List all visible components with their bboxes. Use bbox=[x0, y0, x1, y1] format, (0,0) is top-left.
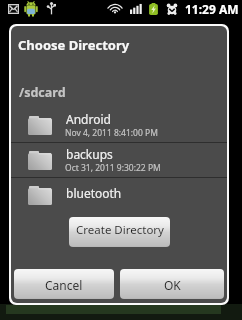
staticText: 11:29 AM bbox=[185, 1, 239, 17]
staticText: Create Directory bbox=[76, 222, 164, 238]
staticText: Nov 4, 2011 8:41:00 PM bbox=[65, 127, 158, 139]
button[interactable]: Android bbox=[11, 108, 227, 142]
staticText: Android bbox=[66, 111, 111, 127]
staticText: Oct 31, 2011 9:30:22 PM bbox=[65, 162, 161, 174]
staticText: Choose Directory bbox=[18, 36, 130, 54]
staticText: /sdcard bbox=[19, 84, 66, 101]
staticText: Cancel bbox=[45, 277, 83, 293]
button[interactable]: backups bbox=[11, 143, 227, 177]
staticText: bluetooth bbox=[66, 185, 122, 201]
staticText: backups bbox=[66, 146, 113, 162]
staticText: OK bbox=[164, 277, 181, 293]
button[interactable]: bluetooth bbox=[11, 178, 227, 212]
button[interactable]: Cancel bbox=[14, 269, 114, 299]
button[interactable]: OK bbox=[120, 269, 224, 299]
button[interactable]: Create Directory bbox=[69, 217, 170, 247]
